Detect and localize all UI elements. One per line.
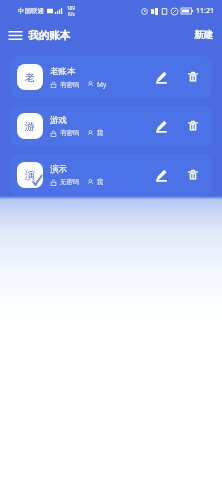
staticText: 有密码 [60, 129, 80, 137]
button[interactable]: Edit [148, 113, 174, 139]
staticText: 无密码 [60, 178, 80, 186]
button[interactable]: Menu [6, 26, 73, 45]
button[interactable]: Edit [148, 162, 174, 188]
staticText: 有密码 [60, 81, 80, 89]
staticText: 我的账本 [28, 29, 70, 42]
button[interactable]: 新建 [190, 25, 217, 45]
button[interactable]: Delete [180, 162, 206, 188]
staticText: 老账本 [50, 66, 76, 77]
staticText: 11:21 [196, 6, 214, 16]
button[interactable]: 游 [10, 105, 212, 147]
button[interactable]: Delete [180, 64, 206, 90]
staticText: 我 [97, 178, 104, 186]
button[interactable]: Delete [180, 113, 206, 139]
button[interactable]: 演 [10, 154, 212, 196]
staticText: 游戏 [50, 115, 67, 126]
staticText: 我 [97, 129, 104, 137]
staticText: 中国联通 [18, 7, 44, 15]
staticText: 新建 [194, 29, 213, 41]
staticText: 老 [25, 71, 35, 84]
other: Menu [9, 30, 22, 41]
staticText: My [97, 80, 107, 89]
staticText: 189 [67, 5, 75, 11]
button[interactable]: 老 [10, 56, 212, 98]
staticText: 演 [25, 169, 35, 182]
staticText: 演示 [50, 164, 67, 175]
staticText: K/s [68, 11, 75, 17]
button[interactable]: Edit [148, 64, 174, 90]
staticText: 游 [25, 120, 35, 133]
